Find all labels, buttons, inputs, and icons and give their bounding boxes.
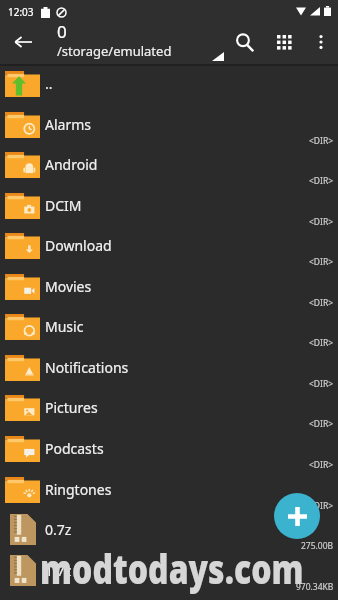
staticText: 970.34KB [296,581,334,593]
staticText: 275.00B [301,540,334,552]
button[interactable]: Podcasts [0,433,338,473]
staticText: modtodays.com [40,541,304,595]
staticText: <DIR> [309,418,334,430]
button[interactable]: Pictures [0,392,338,432]
staticText: <DIR> [309,378,334,390]
staticText: Alarms [45,115,91,134]
staticText: Android [45,155,98,174]
button[interactable]: DCIM [0,190,338,230]
staticText: Movies [45,277,92,296]
staticText: /storage/emulated [57,42,172,60]
staticText: 0.7z [45,520,72,539]
staticText: <DIR> [309,337,334,349]
staticText: <DIR> [309,175,334,187]
button[interactable]: Android [0,149,338,189]
button[interactable]: More options [304,21,338,63]
staticText: Ringtones [45,480,112,499]
staticText: Music [45,317,84,336]
staticText: <DIR> [309,135,334,147]
button[interactable]: Music [0,311,338,351]
button[interactable]: .. [0,68,338,108]
staticText: Download [45,236,112,255]
staticText: 0 [57,20,67,43]
button[interactable]: Movies [0,271,338,311]
staticText: Pictures [45,398,98,417]
button[interactable]: Download [0,230,338,270]
staticText: <DIR> [309,216,334,228]
staticText: DCIM [45,196,82,215]
staticText: <DIR> [309,500,334,512]
staticText: Notifications [45,358,129,377]
button[interactable]: Add [274,493,320,539]
button[interactable]: Grid view [264,21,304,63]
staticText: 1.7z [45,561,72,580]
button[interactable]: Notifications [0,352,338,392]
button[interactable]: Search [224,21,264,63]
staticText: 12:03 [8,5,34,19]
staticText: Podcasts [45,439,104,458]
button[interactable]: 1.7z [0,555,338,595]
button[interactable]: Back [0,21,46,63]
staticText: <DIR> [309,256,334,268]
button[interactable]: 0.7z [0,514,338,554]
button[interactable]: Ringtones [0,474,338,514]
button[interactable]: Alarms [0,109,338,149]
staticText: <DIR> [309,297,334,309]
staticText: <DIR> [309,459,334,471]
staticText: .. [45,74,53,93]
